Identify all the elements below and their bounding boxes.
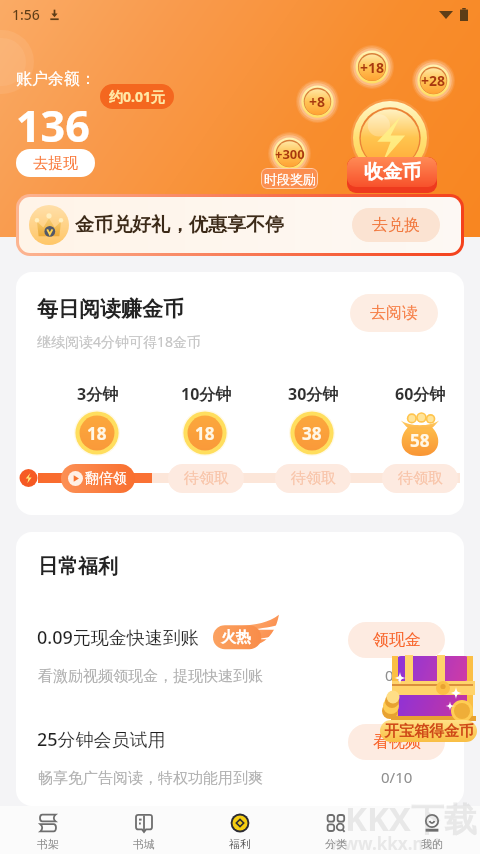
staticText: 收金币 [364,160,421,184]
button[interactable]: 待领取 [275,464,351,493]
staticText: 继续阅读4分钟可得18金币 [37,332,202,351]
button[interactable]: 看视频 [348,724,445,760]
staticText: 38 [302,422,322,445]
staticText: 翻倍领 [85,470,127,488]
staticText: 136 [16,96,90,155]
staticText: 18 [195,422,215,445]
button[interactable]: 我的 [384,806,480,854]
button[interactable]: 收金币 [347,157,437,193]
staticText: 10分钟 [181,383,232,405]
staticText: 0/10 [381,767,413,787]
staticText: 18 [87,422,107,445]
staticText: 看激励视频领现金，提现快速到账 [38,667,263,686]
button[interactable]: 书城 [96,806,192,854]
staticText: +8 [309,92,326,111]
staticText: +28 [421,71,446,90]
staticText: 3分钟 [77,383,119,405]
button[interactable]: 待领取 [168,464,244,493]
staticText: 书城 [133,837,155,851]
staticText: 去提现 [33,154,78,173]
staticText: 30分钟 [288,383,339,405]
button[interactable]: 去阅读 [350,294,438,332]
staticText: +18 [360,58,385,77]
staticText: 58 [410,429,430,452]
button[interactable]: 翻倍领 [61,464,135,493]
staticText: 日常福利 [38,554,118,579]
staticText: 约0.01元 [109,87,165,106]
staticText: 时段奖励 [264,171,316,187]
button[interactable]: 领现金 [348,622,445,658]
staticText: 开宝箱得金币 [384,722,474,741]
staticText: 金币兑好礼，优惠享不停 [75,213,284,237]
staticText: +300 [275,145,305,163]
button[interactable]: 去提现 [16,149,95,177]
button[interactable]: 开宝箱得金币 [380,720,477,742]
staticText: 火热 [221,628,251,647]
staticText: 领现金 [373,630,421,650]
button[interactable]: 福利 [192,806,288,854]
staticText: KKX下载 [345,796,477,841]
staticText: 账户余额： [16,69,96,89]
staticText: 去兑换 [372,215,420,235]
staticText: 去阅读 [370,303,418,323]
staticText: 每日阅读赚金币 [37,296,184,322]
button[interactable]: 金币兑好礼，优惠享不停 [19,197,461,253]
staticText: 畅享免广告阅读，特权功能用到爽 [38,769,263,788]
staticText: 0/1 [385,665,408,685]
staticText: 待领取 [291,469,336,488]
staticText: 1:56 [12,5,40,24]
staticText: 待领取 [184,469,229,488]
staticText: 分类 [325,837,347,851]
staticText: 0.09元现金快速到账 [37,625,199,650]
staticText: 60分钟 [395,383,446,405]
button[interactable]: 分类 [288,806,384,854]
staticText: 看视频 [373,732,421,752]
staticText: 25分钟会员试用 [37,727,166,752]
staticText: 书架 [37,837,59,851]
button[interactable]: 待领取 [382,464,458,493]
button[interactable]: 去兑换 [352,208,440,242]
staticText: 待领取 [398,469,443,488]
staticText: 我的 [421,837,443,851]
button[interactable]: 书架 [0,806,96,854]
staticText: www.kkx.net [329,832,442,854]
staticText: 福利 [229,837,251,851]
